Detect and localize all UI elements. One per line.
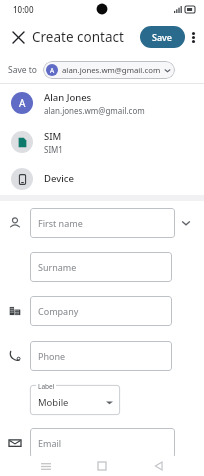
button[interactable]: Phone <box>30 341 172 371</box>
staticText: Mobile <box>38 396 69 409</box>
button[interactable]: Recent apps <box>35 456 57 476</box>
button[interactable]: Surname <box>30 252 172 282</box>
staticText: Company <box>38 305 79 317</box>
button[interactable]: Back <box>148 456 170 476</box>
staticText: Label <box>38 382 55 391</box>
button[interactable]: Email <box>30 428 175 458</box>
staticText: 10:00 <box>13 4 34 15</box>
button[interactable]: A <box>43 61 175 79</box>
staticText: A <box>50 66 55 75</box>
button[interactable]: Save <box>140 26 185 48</box>
staticText: First name <box>38 217 83 229</box>
staticText: Alan Jones <box>44 91 92 104</box>
button[interactable]: First name <box>30 208 175 238</box>
button[interactable]: A <box>0 84 204 122</box>
staticText: Save to <box>8 64 37 76</box>
button[interactable]: Label <box>30 385 120 415</box>
staticText: alan.jones.wm@gmail.com <box>62 65 161 76</box>
button[interactable]: More options <box>184 28 202 46</box>
staticText: SIM <box>44 130 62 143</box>
staticText: Save <box>152 31 173 43</box>
staticText: Email <box>38 437 62 449</box>
button[interactable]: Home <box>91 456 113 476</box>
staticText: Create contact <box>32 28 124 46</box>
button[interactable]: Expand name fields <box>175 212 197 234</box>
staticText: SIM1 <box>44 144 63 155</box>
button[interactable]: Device <box>0 162 204 195</box>
staticText: A <box>19 96 26 110</box>
button[interactable]: SIM <box>0 122 204 162</box>
button[interactable]: Close <box>5 24 31 50</box>
button[interactable]: Company <box>30 296 172 326</box>
staticText: Phone <box>38 350 66 362</box>
staticText: Device <box>44 172 74 185</box>
staticText: Surname <box>38 261 77 273</box>
staticText: alan.jones.wm@gmail.com <box>44 105 145 116</box>
